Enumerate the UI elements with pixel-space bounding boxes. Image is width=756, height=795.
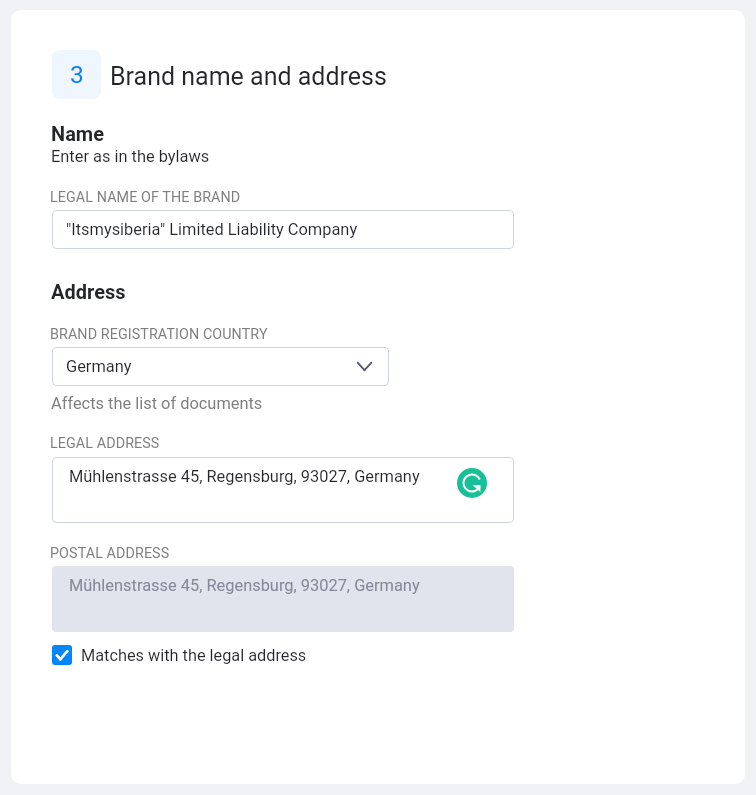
staticText: Name: [51, 122, 104, 145]
button[interactable]: Germany: [52, 347, 389, 386]
button[interactable]: "Itsmysiberia" Limited Liability Company: [52, 210, 514, 249]
button[interactable]: Matches with the legal address: [52, 645, 307, 665]
button[interactable]: Mühlenstrasse 45, Regensburg, 93027, Ger…: [52, 457, 514, 523]
staticText: "Itsmysiberia" Limited Liability Company: [66, 220, 358, 239]
staticText: LEGAL ADDRESS: [50, 435, 160, 452]
staticText: Enter as in the bylaws: [51, 147, 210, 166]
staticText: Mühlenstrasse 45, Regensburg, 93027, Ger…: [69, 467, 420, 486]
staticText: POSTAL ADDRESS: [50, 545, 170, 562]
staticText: Germany: [66, 357, 132, 376]
staticText: Affects the list of documents: [51, 394, 263, 413]
staticText: Matches with the legal address: [81, 646, 307, 665]
staticText: Brand name and address: [110, 62, 387, 91]
staticText: 3: [70, 60, 84, 89]
staticText: BRAND REGISTRATION COUNTRY: [50, 326, 268, 343]
button[interactable]: Refresh address: [457, 468, 487, 498]
staticText: Mühlenstrasse 45, Regensburg, 93027, Ger…: [69, 576, 420, 595]
staticText: LEGAL NAME OF THE BRAND: [50, 189, 241, 206]
staticText: Address: [51, 280, 126, 303]
